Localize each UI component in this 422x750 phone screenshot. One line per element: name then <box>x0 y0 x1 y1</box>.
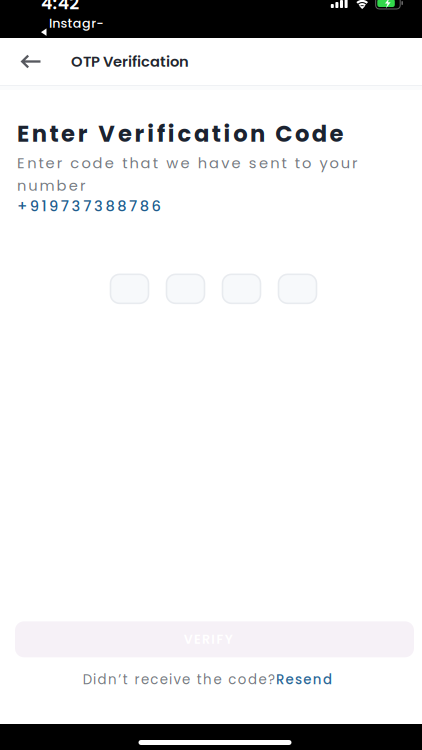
staticText: Didn’t receive the code? <box>83 670 291 689</box>
staticText: +919737388786 <box>17 196 180 216</box>
staticText: VERIFY <box>184 630 245 648</box>
button[interactable]: Resend <box>276 670 345 689</box>
staticText: OTP Verification <box>71 51 198 72</box>
staticText: Enter code that we have sent to your <box>17 153 376 173</box>
staticText: Instagram <box>49 14 103 50</box>
button[interactable]: Back <box>11 42 51 81</box>
staticText: number <box>17 175 104 196</box>
staticText: Enter Verification Code <box>17 118 366 150</box>
staticText: 4:42 <box>41 0 92 15</box>
staticText: Resend <box>276 670 345 689</box>
